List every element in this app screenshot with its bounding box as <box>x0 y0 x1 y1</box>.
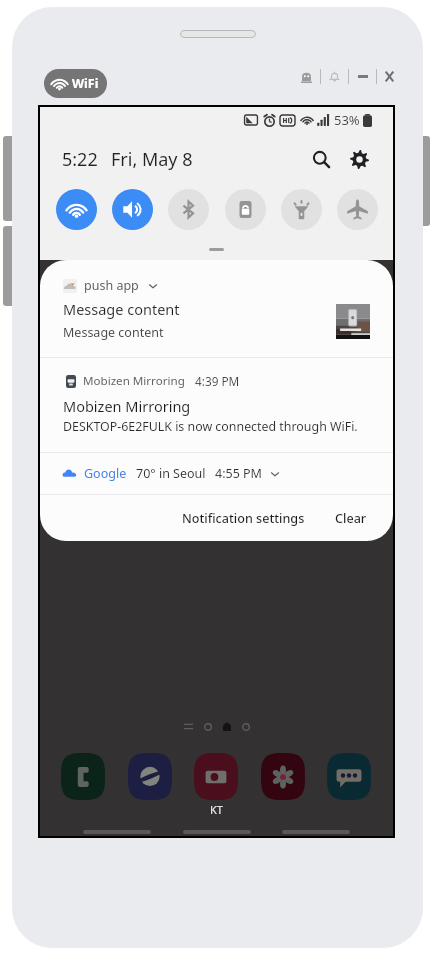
button[interactable]: Google <box>40 453 393 494</box>
button[interactable]: Gallery <box>261 753 305 800</box>
button[interactable]: Messages <box>327 753 371 800</box>
staticText: 4:55 PM <box>215 465 262 482</box>
button[interactable]: Sound <box>112 189 153 230</box>
button[interactable]: Airplane mode <box>337 189 378 230</box>
button[interactable]: Internet <box>128 753 172 800</box>
staticText: Clear <box>335 510 367 527</box>
staticText: 53% <box>334 111 360 129</box>
staticText: Message content <box>63 324 164 341</box>
button[interactable]: Clear <box>329 502 373 535</box>
staticText: 4:39 PM <box>195 373 240 389</box>
staticText: Fri, May 8 <box>111 147 193 172</box>
button[interactable]: Wi-Fi <box>56 189 97 230</box>
button[interactable]: Notification settings <box>176 502 311 535</box>
button[interactable]: Camera <box>194 753 238 800</box>
staticText: Mobizen Mirroring <box>83 373 185 389</box>
button[interactable]: SIM <box>225 189 266 230</box>
button[interactable]: Bluetooth <box>168 189 209 230</box>
button[interactable]: Search <box>308 146 334 172</box>
button[interactable]: Phone <box>61 753 105 800</box>
button[interactable]: Flashlight <box>281 189 322 230</box>
staticText: Message content <box>63 299 180 319</box>
staticText: WiFi <box>72 75 99 92</box>
staticText: 5:22 <box>62 147 98 172</box>
button[interactable]: Close <box>383 66 396 86</box>
staticText: push app <box>84 277 139 294</box>
staticText: Mobizen Mirroring <box>63 396 191 416</box>
button[interactable]: push app <box>40 260 393 357</box>
staticText: KT <box>210 802 223 817</box>
button[interactable]: Mobizen Mirroring <box>40 358 393 452</box>
staticText: 70° in Seoul <box>136 465 206 482</box>
staticText: Notification settings <box>182 510 305 527</box>
button[interactable]: Minimize <box>355 66 370 86</box>
button[interactable]: Snapshot <box>298 66 314 86</box>
button[interactable]: WiFi <box>44 69 107 98</box>
staticText: DESKTOP-6E2FULK is now connected through… <box>63 418 358 435</box>
button[interactable]: Notifications <box>327 66 342 86</box>
button[interactable]: Settings <box>346 146 372 172</box>
staticText: Google <box>84 465 127 482</box>
